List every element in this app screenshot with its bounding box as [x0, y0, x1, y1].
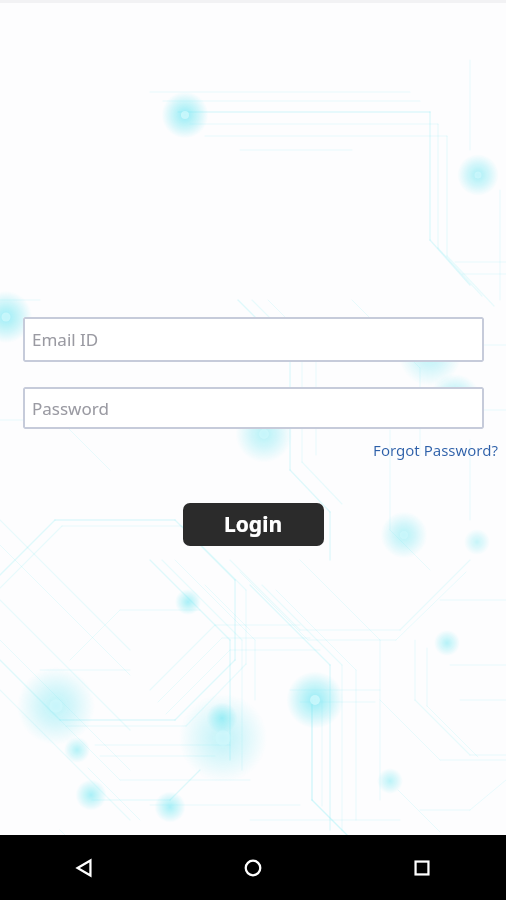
button[interactable]: Password	[23, 387, 484, 429]
button[interactable]: Recent apps	[337, 835, 506, 900]
staticText: Password	[32, 397, 109, 420]
button[interactable]: Home	[168, 835, 337, 900]
button[interactable]: Email ID	[23, 317, 484, 362]
button[interactable]: Back	[0, 835, 168, 900]
staticText: Forgot Password?	[373, 440, 498, 460]
staticText: Login	[224, 510, 283, 539]
button[interactable]: Forgot Password?	[370, 437, 501, 463]
staticText: Email ID	[32, 328, 99, 351]
button[interactable]: Login	[183, 503, 324, 546]
